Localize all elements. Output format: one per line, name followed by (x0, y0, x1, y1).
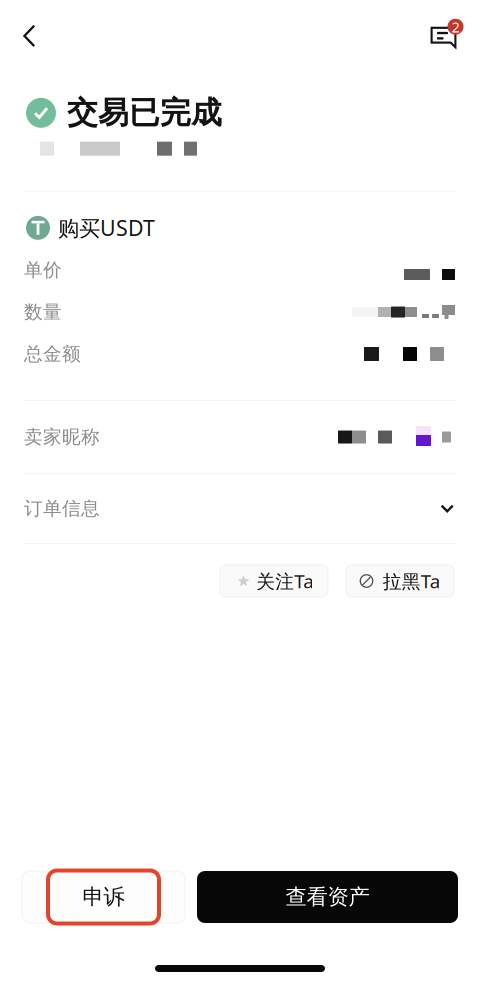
staticText: 查看资产 (285, 884, 369, 910)
staticText: 总金额 (24, 342, 81, 365)
staticText: 单价 (24, 258, 62, 281)
staticText: 数量 (24, 300, 62, 323)
button[interactable]: Back (0, 0, 69, 58)
button[interactable]: 订单信息 (0, 474, 480, 543)
staticText: 申诉 (82, 884, 124, 910)
button[interactable]: Messages (432, 2, 480, 55)
button[interactable]: 申诉 (22, 871, 185, 923)
button[interactable]: 关注Ta (220, 565, 328, 597)
staticText: 卖家昵称 (24, 425, 100, 448)
button[interactable]: 查看资产 (197, 871, 458, 923)
staticText: 关注Ta (256, 569, 313, 593)
button[interactable]: 拉黑Ta (346, 565, 454, 597)
staticText: 2 (451, 17, 459, 36)
staticText: 购买USDT (58, 214, 155, 242)
staticText: 交易已完成 (67, 94, 222, 132)
staticText: 拉黑Ta (383, 569, 440, 593)
staticText: 订单信息 (24, 497, 100, 520)
